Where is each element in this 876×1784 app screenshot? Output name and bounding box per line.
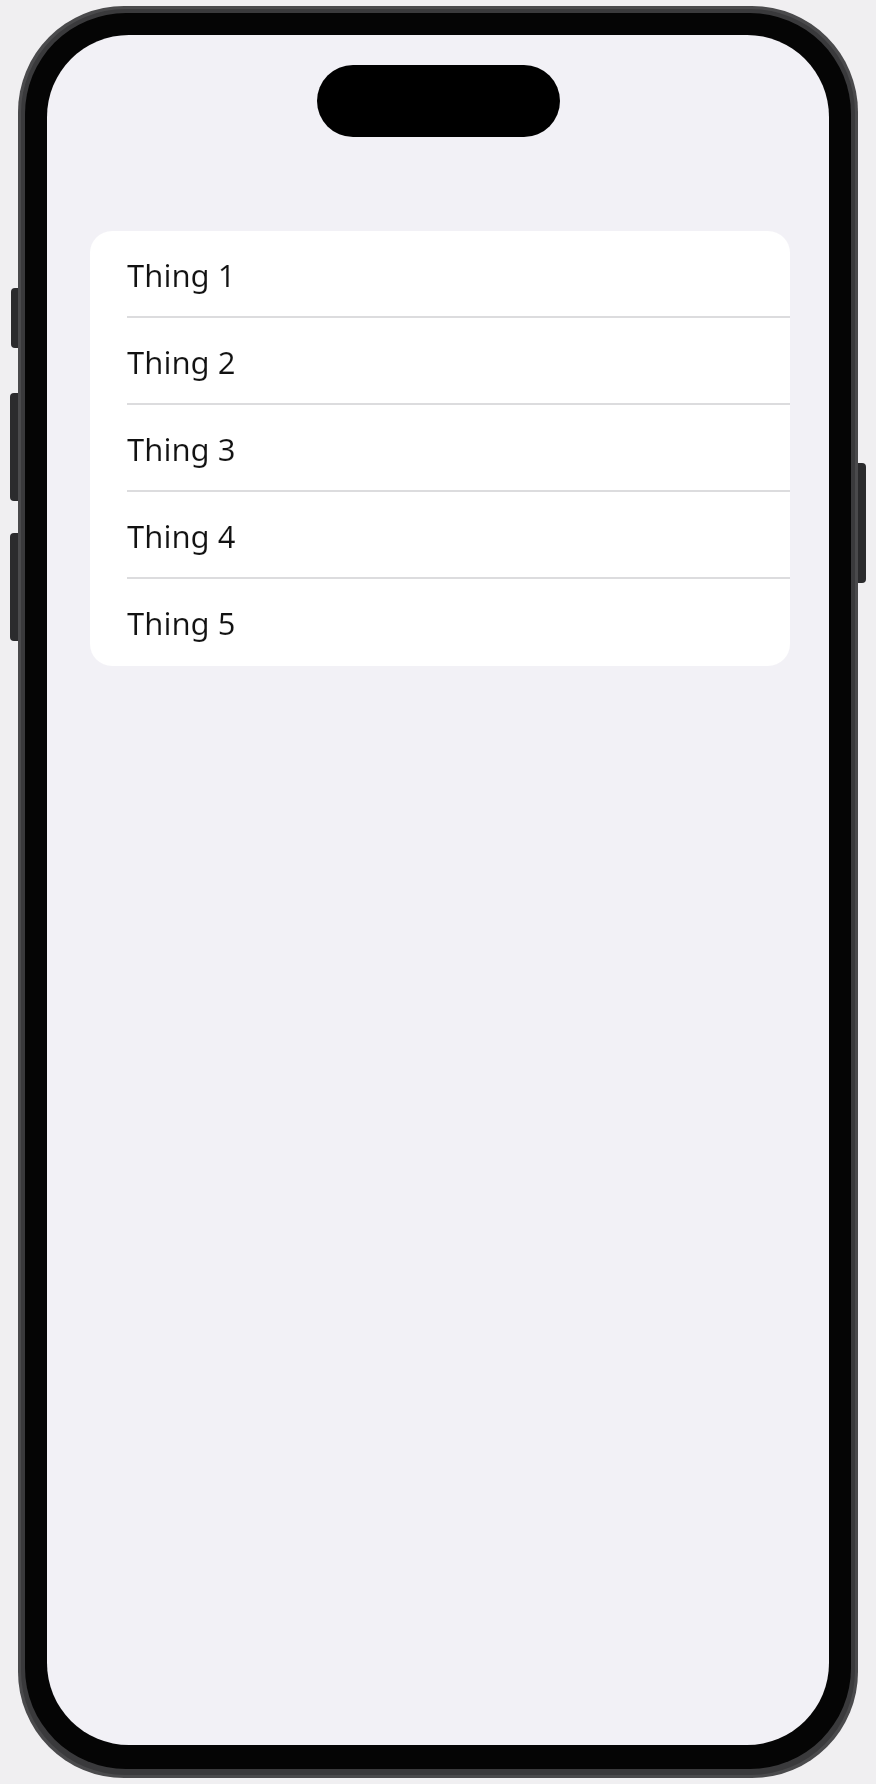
button[interactable]: Thing 1 <box>90 231 790 318</box>
staticText: Thing 1 <box>127 254 236 296</box>
button[interactable]: Thing 4 <box>90 492 790 579</box>
staticText: Thing 3 <box>127 428 236 470</box>
button[interactable]: Thing 2 <box>90 318 790 405</box>
staticText: Thing 4 <box>127 515 236 557</box>
button[interactable]: Thing 5 <box>90 579 790 666</box>
staticText: Thing 2 <box>127 341 236 383</box>
staticText: Thing 5 <box>127 602 236 644</box>
button[interactable]: Thing 3 <box>90 405 790 492</box>
